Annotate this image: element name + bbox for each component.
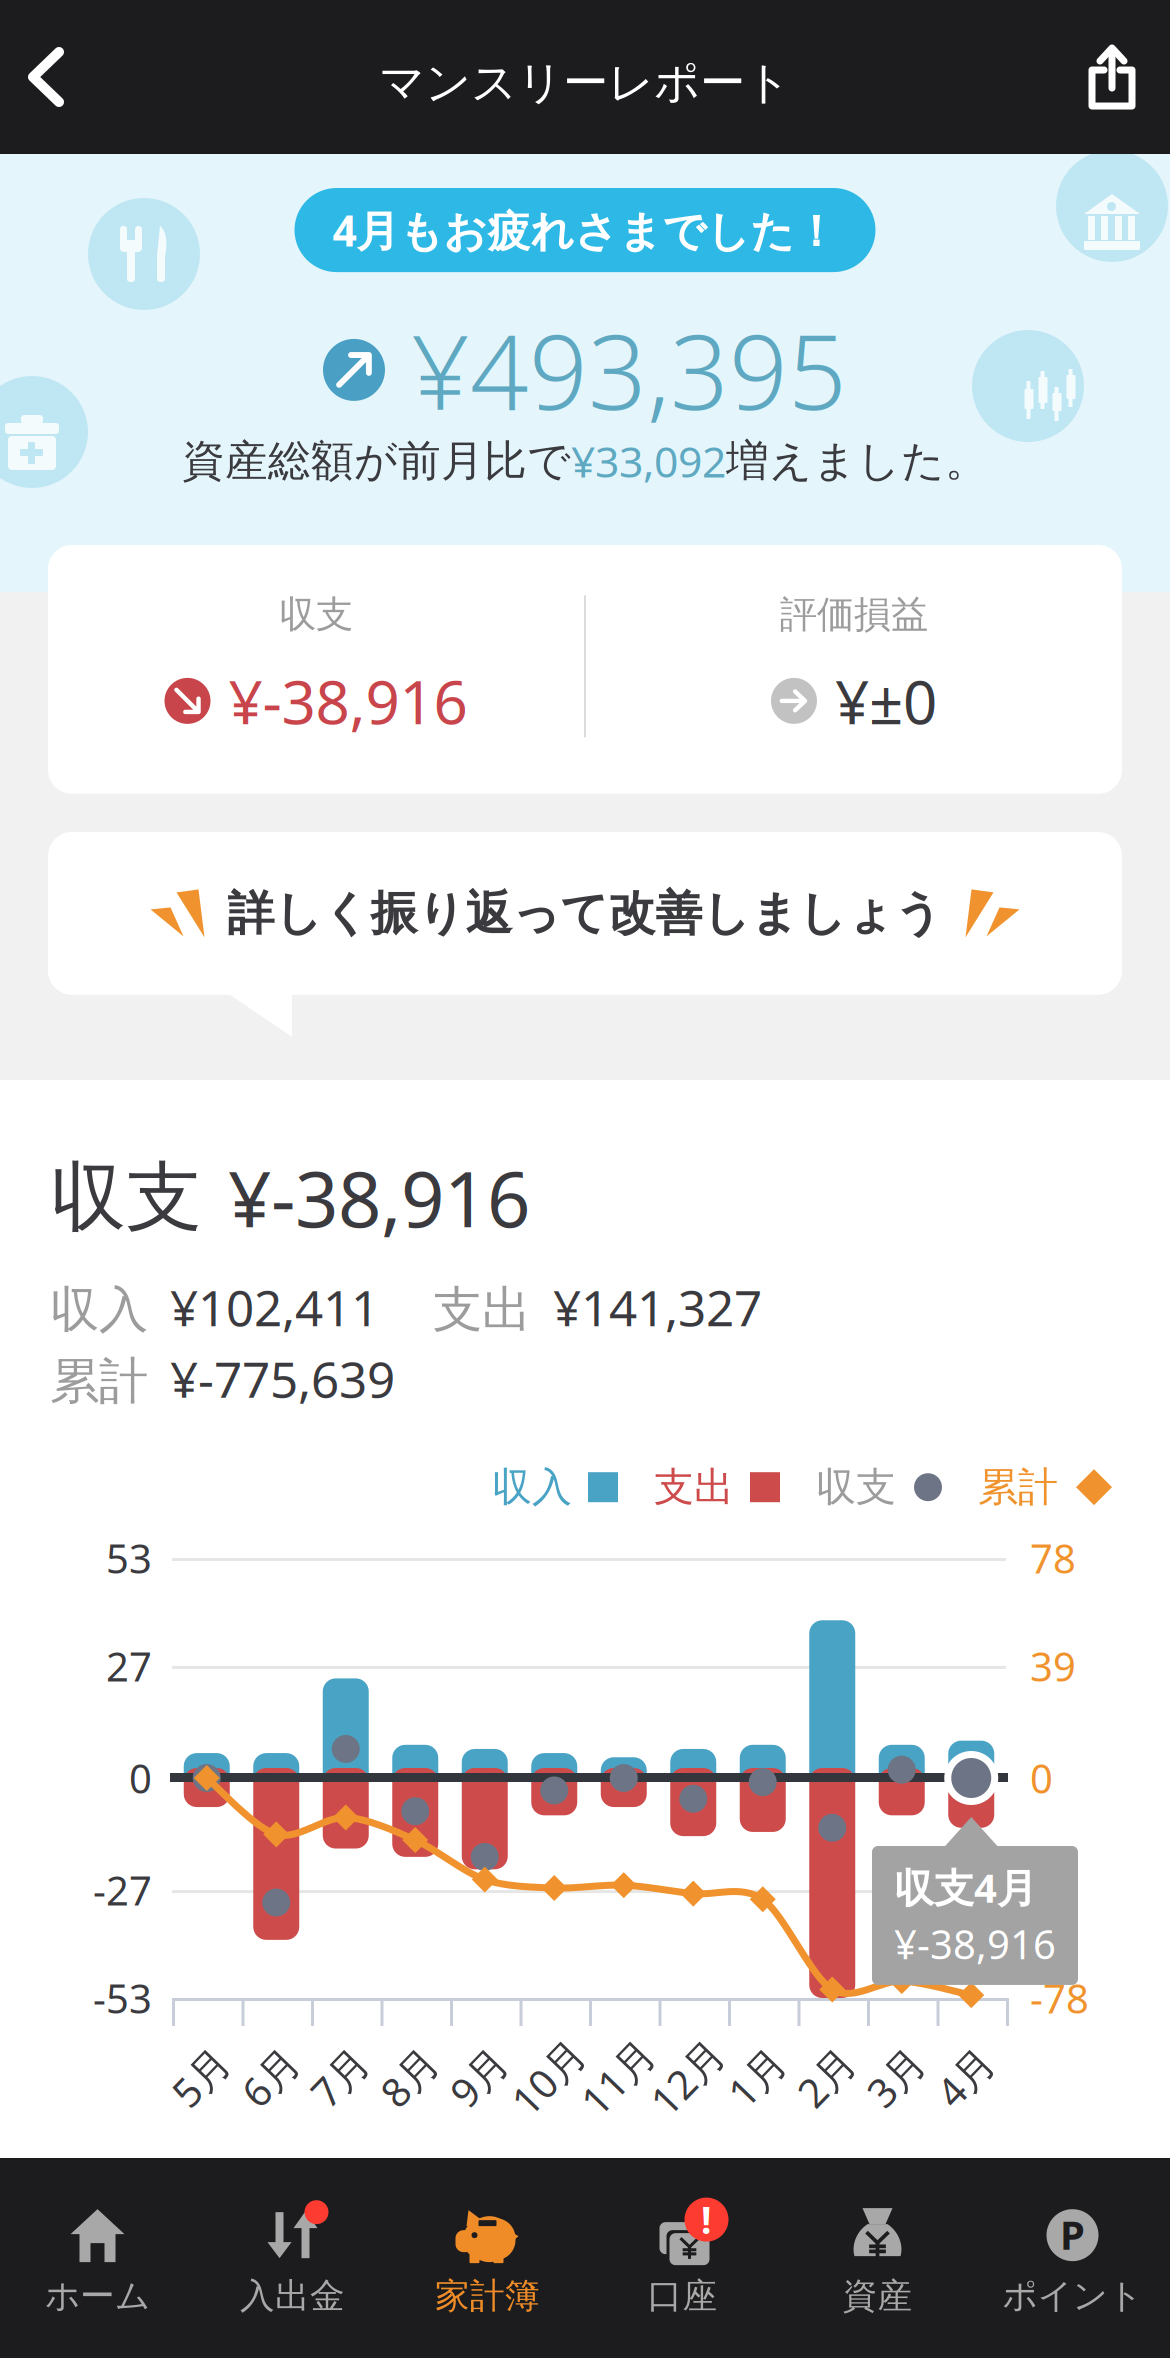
staticText: 2月: [795, 2050, 858, 2104]
staticText: 78: [1030, 1531, 1076, 1585]
button[interactable]: Back: [0, 0, 92, 154]
staticText: 増えました。: [726, 434, 988, 488]
staticText: 11月: [575, 2050, 661, 2104]
staticText: P: [1060, 2207, 1085, 2261]
button[interactable]: !: [585, 2184, 780, 2332]
staticText: ¥-38,916: [228, 660, 467, 742]
button[interactable]: 詳しく振り返って改善しましょう: [48, 832, 1122, 1037]
staticText: -78: [1030, 1971, 1089, 2025]
staticText: 4月もお疲れさまでした！: [332, 201, 837, 259]
staticText: 累計: [50, 1350, 148, 1412]
staticText: 収入: [50, 1279, 148, 1341]
staticText: ¥-38,916: [228, 1146, 530, 1249]
staticText: 3月: [864, 2050, 927, 2104]
staticText: 12月: [644, 2050, 730, 2104]
staticText: 収支: [279, 591, 353, 638]
staticText: 53: [106, 1531, 152, 1585]
staticText: -27: [93, 1863, 152, 1917]
staticText: ¥33,092: [571, 432, 726, 490]
staticText: 0: [1030, 1751, 1053, 1805]
staticText: 評価損益: [780, 591, 928, 638]
staticText: ¥102,411: [170, 1273, 379, 1341]
button[interactable]: 家計簿: [390, 2184, 585, 2332]
staticText: -53: [93, 1971, 152, 2025]
staticText: 累計: [978, 1462, 1058, 1512]
staticText: 8月: [378, 2050, 441, 2104]
staticText: 4月: [934, 2050, 997, 2104]
button[interactable]: 入出金: [195, 2184, 390, 2332]
staticText: 口座: [647, 2274, 717, 2318]
staticText: マンスリーレポート: [379, 54, 791, 111]
staticText: ¥±0: [835, 660, 937, 742]
staticText: 詳しく振り返って改善しましょう: [227, 884, 942, 943]
staticText: 5月: [169, 2050, 232, 2104]
staticText: 収支: [816, 1462, 896, 1512]
staticText: 0: [129, 1751, 152, 1805]
staticText: 資産: [842, 2274, 912, 2318]
staticText: 収支4月: [894, 1860, 1037, 1914]
button[interactable]: P: [975, 2184, 1170, 2332]
staticText: ¥-38,916: [894, 1916, 1056, 1971]
staticText: 支出: [433, 1279, 531, 1341]
staticText: 27: [106, 1639, 152, 1693]
button[interactable]: ホーム: [0, 2184, 195, 2332]
staticText: 10月: [505, 2050, 591, 2104]
button[interactable]: 資産: [780, 2184, 975, 2332]
staticText: 収支: [50, 1150, 202, 1246]
staticText: 家計簿: [435, 2274, 540, 2318]
staticText: 1月: [725, 2050, 788, 2104]
staticText: 7月: [308, 2050, 371, 2104]
staticText: 資産総額が前月比で: [182, 434, 571, 488]
staticText: 入出金: [240, 2274, 345, 2318]
staticText: 6月: [239, 2050, 302, 2104]
staticText: ¥-775,639: [170, 1345, 395, 1412]
staticText: ¥141,327: [553, 1273, 762, 1341]
staticText: ホーム: [45, 2274, 150, 2318]
staticText: 支出: [654, 1462, 734, 1512]
staticText: 9月: [447, 2050, 510, 2104]
staticText: ¥493,395: [411, 300, 847, 440]
button[interactable]: Share: [1054, 0, 1170, 154]
staticText: ポイント: [1002, 2274, 1142, 2318]
staticText: !: [701, 2194, 712, 2245]
staticText: 収入: [492, 1462, 572, 1512]
staticText: 39: [1030, 1639, 1076, 1693]
